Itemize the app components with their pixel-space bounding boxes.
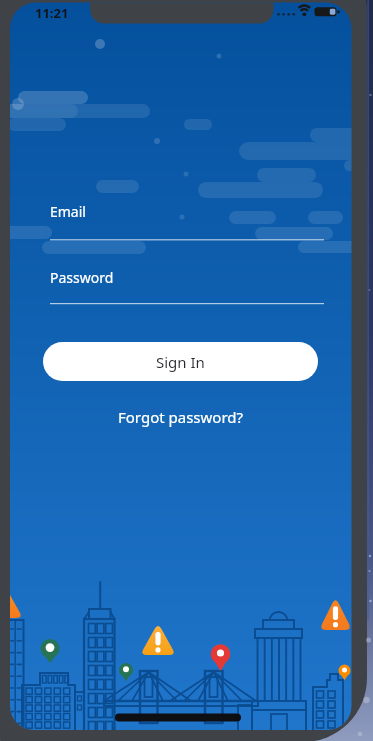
staticText: 11:21 [35, 4, 69, 22]
staticText: Password [50, 268, 114, 287]
button[interactable]: Forgot password? [103, 402, 258, 432]
button[interactable]: Password [44, 264, 330, 308]
button[interactable]: Sign In [43, 342, 318, 381]
button[interactable]: Email [44, 198, 330, 242]
staticText: Email [50, 202, 86, 221]
staticText: Sign In [156, 352, 205, 372]
staticText: Forgot password? [118, 407, 244, 427]
